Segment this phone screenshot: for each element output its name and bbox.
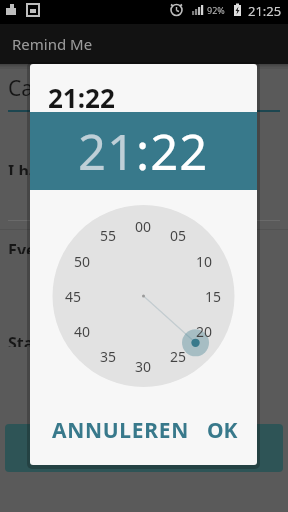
staticText: 35 <box>100 347 117 365</box>
staticText: I have <box>8 160 58 175</box>
staticText: Categ <box>8 74 66 96</box>
staticText: 30 <box>135 357 152 375</box>
staticText: 15 <box>205 287 222 305</box>
staticText: 55 <box>100 226 117 244</box>
staticText: 20 <box>196 322 213 340</box>
staticText: ANNULEREN <box>52 416 189 445</box>
button[interactable]: OK <box>207 416 238 445</box>
staticText: Start <box>8 332 48 347</box>
staticText: 21:22 <box>78 118 209 185</box>
staticText: 92% <box>207 4 225 16</box>
staticText: 40 <box>74 322 91 340</box>
staticText: 25 <box>170 347 187 365</box>
staticText: 05 <box>170 226 187 244</box>
staticText: 21:22 <box>48 80 115 112</box>
staticText: 10 <box>196 252 213 270</box>
button[interactable]: ANNULEREN <box>52 416 189 445</box>
staticText: 45 <box>65 287 82 305</box>
staticText: OK <box>207 416 238 445</box>
staticText: 21:25 <box>248 2 282 20</box>
staticText: 50 <box>74 252 91 270</box>
staticText: Remind Me <box>12 34 93 54</box>
staticText: Every <box>8 239 52 254</box>
staticText: 00 <box>135 217 152 235</box>
button[interactable] <box>5 424 283 472</box>
